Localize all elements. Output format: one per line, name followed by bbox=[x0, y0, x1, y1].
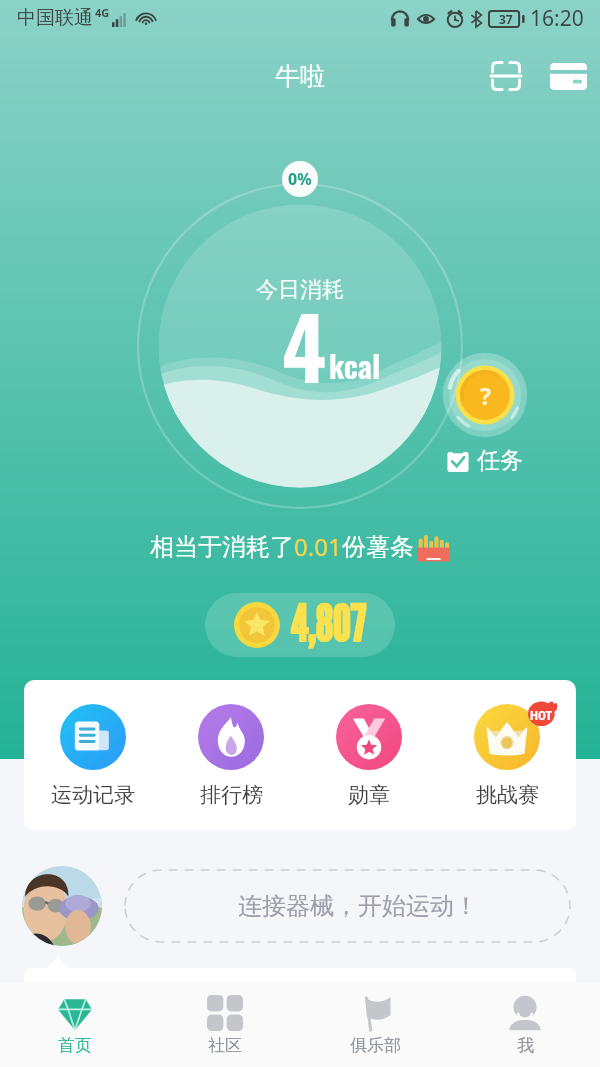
button[interactable]: 任务 bbox=[446, 446, 523, 475]
staticText: 4 bbox=[282, 283, 327, 407]
staticText: 37 bbox=[499, 11, 513, 27]
staticText: 连接器械，开始运动！ bbox=[238, 891, 478, 921]
button[interactable]: 社区 bbox=[150, 983, 300, 1067]
staticText: 牛啦 bbox=[275, 61, 325, 92]
staticText: 4G bbox=[95, 5, 110, 20]
staticText: 4,807 bbox=[290, 594, 366, 654]
staticText: 排行榜 bbox=[200, 782, 263, 808]
button[interactable]: 连接器械，开始运动！ bbox=[125, 870, 570, 942]
button[interactable]: HOT bbox=[438, 680, 576, 830]
staticText: kcal bbox=[329, 342, 381, 388]
staticText: 首页 bbox=[58, 1035, 92, 1056]
staticText: 中国联通 bbox=[17, 6, 93, 30]
staticText: 今日消耗 bbox=[0, 276, 600, 304]
staticText: 0.01 bbox=[294, 530, 342, 563]
staticText: 16:20 bbox=[530, 4, 584, 33]
staticText: 我 bbox=[517, 1035, 534, 1056]
button[interactable]: 我 bbox=[450, 983, 600, 1067]
button[interactable]: 首页 bbox=[0, 983, 150, 1067]
staticText: 运动记录 bbox=[51, 782, 135, 808]
button[interactable]: 运动记录 bbox=[24, 680, 162, 830]
button[interactable]: 头像 bbox=[22, 866, 102, 946]
button[interactable]: 4,807 bbox=[205, 593, 395, 657]
staticText: 相当于消耗了 bbox=[150, 532, 294, 562]
staticText: 挑战赛 bbox=[476, 782, 539, 808]
button[interactable]: 扫一扫 bbox=[484, 54, 528, 98]
staticText: 勋章 bbox=[348, 782, 390, 808]
staticText: ? bbox=[480, 380, 491, 411]
button[interactable]: 任务 bbox=[441, 351, 529, 439]
button[interactable]: 勋章 bbox=[300, 680, 438, 830]
button[interactable]: 俱乐部 bbox=[300, 983, 450, 1067]
staticText: 俱乐部 bbox=[350, 1035, 401, 1056]
staticText: 份薯条 bbox=[342, 532, 414, 562]
button[interactable]: 会员卡 bbox=[546, 54, 590, 98]
staticText: 任务 bbox=[477, 446, 523, 475]
button[interactable]: 排行榜 bbox=[162, 680, 300, 830]
staticText: 社区 bbox=[208, 1035, 242, 1056]
staticText: 0% bbox=[288, 168, 312, 190]
button[interactable]: 0% bbox=[282, 161, 318, 197]
staticText: HOT bbox=[530, 708, 553, 723]
